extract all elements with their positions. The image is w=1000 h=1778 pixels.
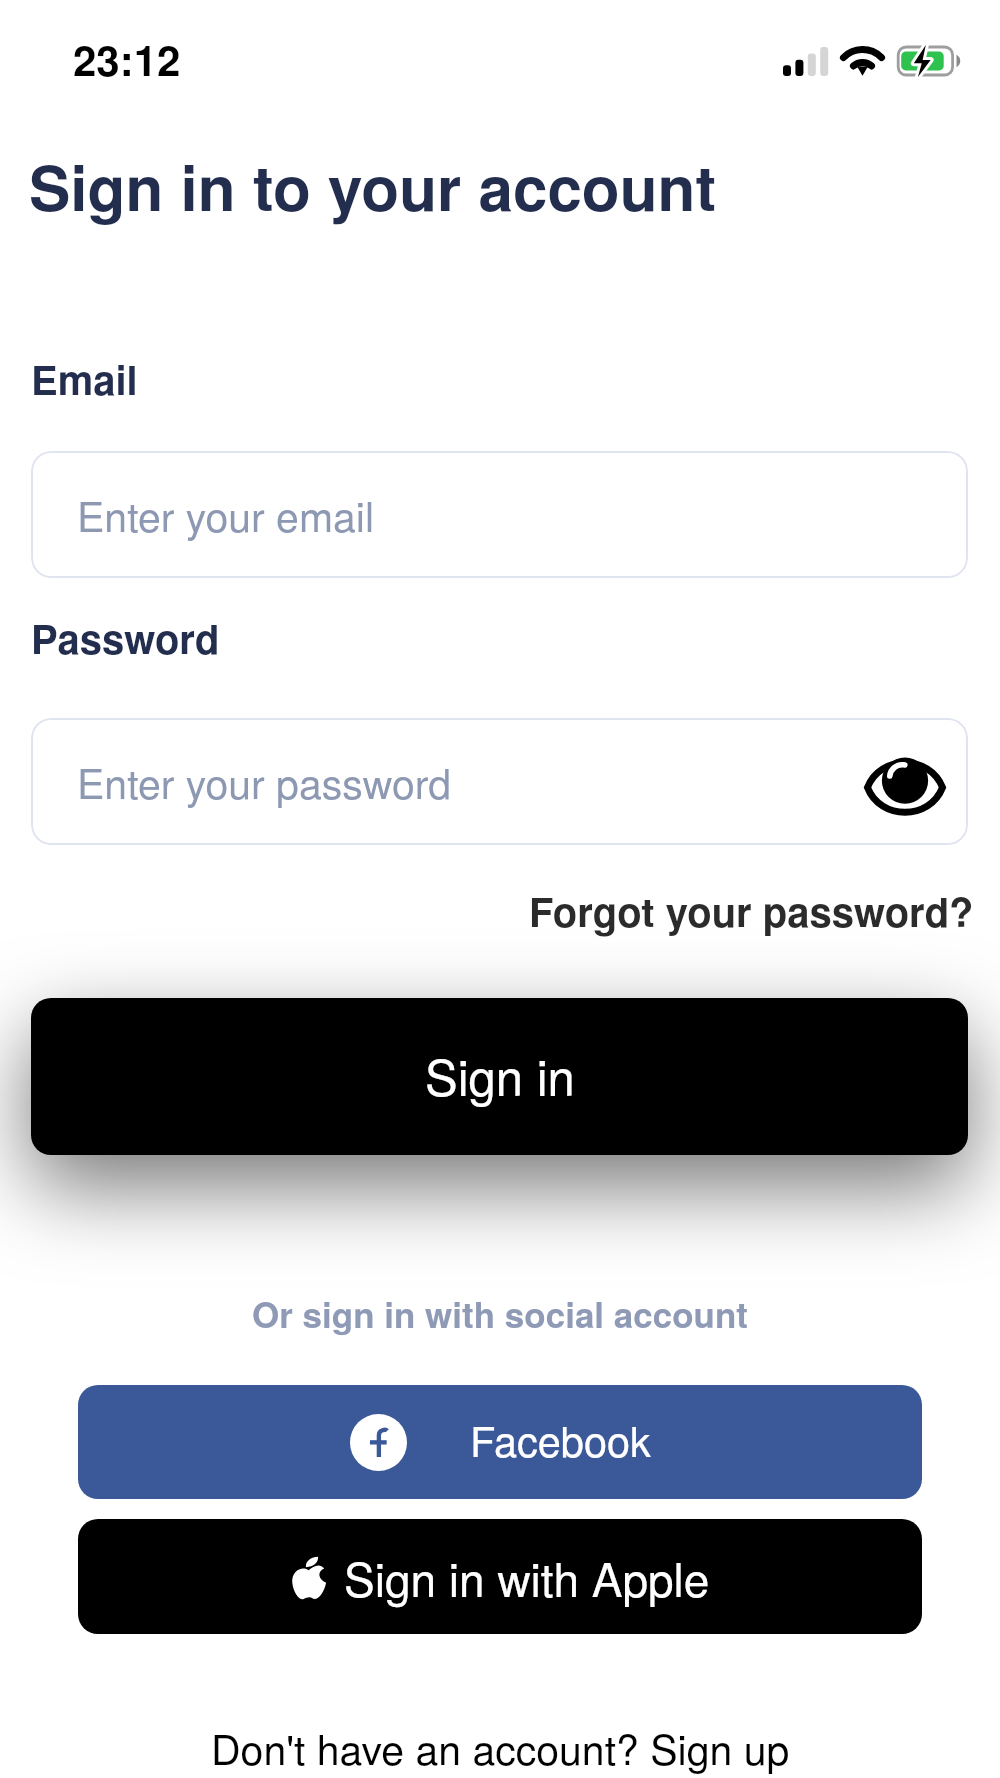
button[interactable]: Forgot your password?: [513, 874, 990, 947]
staticText: Email: [31, 350, 138, 407]
button[interactable]: Enter your email: [31, 451, 968, 578]
staticText: Sign in to your account: [29, 141, 717, 230]
button[interactable]: Enter your password: [31, 718, 968, 845]
staticText: 23:12: [73, 29, 181, 89]
staticText: Enter your email: [77, 485, 375, 544]
staticText: Forgot your password?: [529, 882, 974, 939]
staticText: Enter your password: [77, 752, 452, 811]
button[interactable]: Facebook: [78, 1385, 922, 1499]
staticText: Sign in with Apple: [344, 1544, 710, 1610]
staticText: Or sign in with social account: [0, 1289, 1000, 1339]
staticText: Facebook: [470, 1409, 651, 1468]
button[interactable]: Sign in: [31, 998, 968, 1155]
button[interactable]: Sign in with Apple: [78, 1519, 922, 1634]
button[interactable]: Show password: [857, 741, 953, 833]
staticText: Password: [31, 609, 220, 666]
staticText: Don't have an account? Sign up: [211, 1718, 790, 1777]
staticText: Sign in: [425, 1040, 575, 1110]
button[interactable]: Don't have an account? Sign up: [199, 1712, 802, 1778]
